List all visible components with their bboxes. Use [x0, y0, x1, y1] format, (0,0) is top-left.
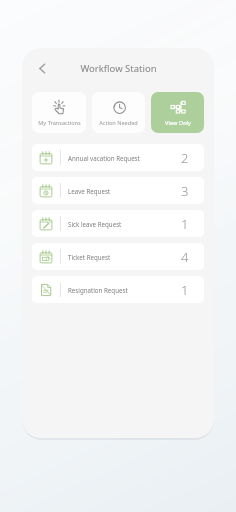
button[interactable]: Action Needed — [92, 92, 145, 133]
button[interactable]: Back — [29, 55, 55, 81]
staticText: Ticket Request — [68, 253, 181, 261]
button[interactable]: My Transactions — [32, 92, 86, 133]
staticText: 4 — [181, 248, 189, 266]
staticText: Workflow Station — [80, 62, 157, 75]
button[interactable]: Ticket Request — [32, 243, 204, 270]
staticText: Resignation Request — [68, 286, 181, 294]
staticText: 2 — [181, 149, 189, 167]
staticText: 1 — [181, 281, 189, 299]
staticText: Sick leave Request — [68, 220, 181, 228]
button[interactable]: View Only — [151, 92, 204, 133]
staticText: Leave Request — [68, 187, 181, 195]
button[interactable]: Sick leave Request — [32, 210, 204, 237]
button[interactable]: Leave Request — [32, 177, 204, 204]
button[interactable]: Resignation Request — [32, 276, 204, 303]
staticText: 3 — [181, 182, 189, 200]
staticText: 1 — [181, 215, 189, 233]
staticText: Annual vacation Request — [68, 154, 181, 162]
staticText: Action Needed — [99, 119, 138, 127]
staticText: My Transactions — [38, 119, 81, 127]
button[interactable]: Annual vacation Request — [32, 144, 204, 171]
staticText: View Only — [165, 119, 191, 127]
